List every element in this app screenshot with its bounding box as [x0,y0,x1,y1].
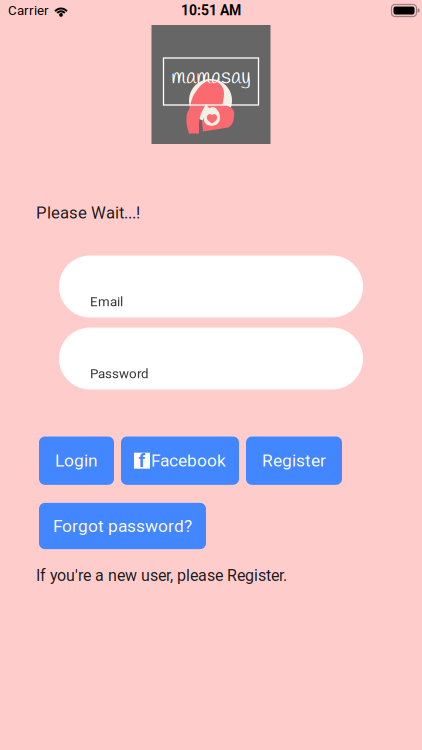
button[interactable]: Register [246,436,342,485]
staticText: Email [90,294,123,309]
staticText: Forgot password? [53,516,192,536]
staticText: Login [55,450,98,471]
button[interactable]: Login [39,436,114,485]
button[interactable]: Forgot password? [39,503,206,549]
staticText: Register [262,450,326,471]
staticText: 10:51 AM [181,2,241,19]
staticText: mamasay [171,62,251,92]
button[interactable]: f [121,436,239,485]
staticText: Facebook [151,450,226,471]
staticText: Carrier [8,3,49,18]
staticText: Please Wait...! [36,203,140,222]
staticText: f [138,450,145,472]
staticText: Password [90,366,149,381]
staticText: If you're a new user, please Register. [36,566,287,585]
